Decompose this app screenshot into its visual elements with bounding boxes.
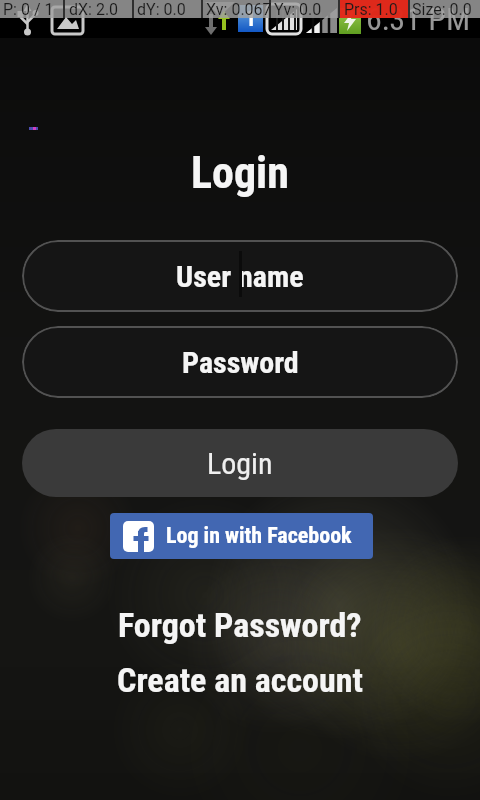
- staticText: P: 0 / 1: [3, 0, 54, 18]
- button[interactable]: Password: [22, 326, 458, 398]
- staticText: Yv: 0.0: [274, 0, 322, 18]
- staticText: Size: 0.0: [412, 0, 472, 18]
- button[interactable]: Log in with Facebook: [110, 513, 373, 559]
- staticText: dX: 2.0: [69, 0, 119, 18]
- staticText: Create an account: [117, 660, 363, 700]
- staticText: 6:31 PM: [366, 0, 471, 38]
- staticText: User name: [176, 259, 304, 294]
- button[interactable]: User name: [22, 240, 458, 312]
- staticText: Login: [207, 446, 273, 481]
- staticText: Password: [182, 345, 299, 380]
- button[interactable]: Login: [22, 429, 458, 497]
- staticText: Forgot Password?: [118, 605, 362, 645]
- staticText: 1: [245, 6, 257, 32]
- staticText: Log in with Facebook: [166, 523, 352, 549]
- staticText: Prs: 1.0: [344, 0, 398, 18]
- staticText: dY: 0.0: [137, 0, 186, 18]
- button[interactable]: Forgot Password?: [0, 605, 480, 645]
- button[interactable]: Create an account: [0, 660, 480, 700]
- staticText: Xv: 0.067: [206, 0, 272, 18]
- staticText: Login: [191, 147, 289, 197]
